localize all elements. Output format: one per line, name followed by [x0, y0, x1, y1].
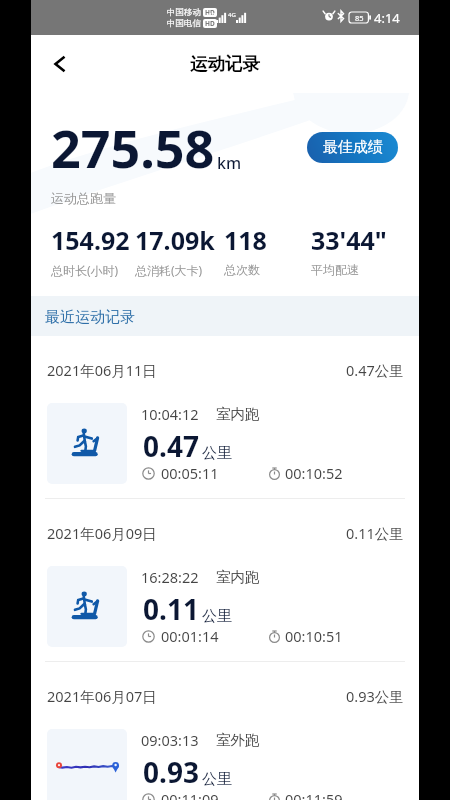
- staticText: 00:10:52: [285, 463, 343, 483]
- staticText: 00:10:51: [285, 626, 343, 646]
- staticText: 总次数: [224, 262, 260, 277]
- staticText: 室内跑: [216, 405, 260, 423]
- staticText: 85: [355, 13, 364, 23]
- staticText: 0.93公里: [346, 686, 404, 706]
- staticText: 10:04:12: [141, 404, 199, 424]
- staticText: 中国电信: [167, 18, 201, 29]
- staticText: 中国移动: [167, 7, 201, 18]
- staticText: 公里: [202, 607, 232, 626]
- staticText: 总消耗(大卡): [135, 262, 203, 278]
- staticText: 0.47: [143, 427, 199, 465]
- button[interactable]: 最佳成绩: [307, 132, 398, 163]
- staticText: 4G: [208, 11, 216, 19]
- staticText: 室内跑: [216, 568, 260, 586]
- staticText: 0.93: [143, 753, 199, 791]
- staticText: 公里: [202, 444, 232, 463]
- staticText: 4:14: [374, 9, 400, 27]
- button[interactable]: 2021年06月07日: [31, 662, 419, 800]
- staticText: 平均配速: [311, 262, 359, 277]
- staticText: 16:28:22: [141, 567, 199, 587]
- staticText: 运动总跑量: [51, 190, 116, 206]
- staticText: 最近运动记录: [45, 308, 135, 327]
- staticText: 0.47公里: [346, 360, 404, 380]
- staticText: 00:05:11: [161, 463, 219, 483]
- staticText: 室外跑: [216, 731, 260, 749]
- staticText: 00:11:09: [161, 789, 219, 800]
- staticText: HD: [205, 19, 215, 28]
- staticText: 2021年06月07日: [47, 686, 157, 706]
- staticText: 公里: [202, 770, 232, 789]
- staticText: 00:11:59: [285, 789, 343, 800]
- staticText: 154.92: [51, 223, 130, 257]
- staticText: 118: [224, 223, 267, 257]
- staticText: km: [217, 152, 242, 174]
- staticText: 总时长(小时): [51, 262, 119, 278]
- button[interactable]: Back: [39, 43, 81, 85]
- staticText: 0.11: [143, 590, 199, 628]
- staticText: 17.09k: [135, 223, 215, 257]
- staticText: 00:01:14: [161, 626, 219, 646]
- staticText: 运动记录: [190, 53, 260, 75]
- staticText: 2021年06月09日: [47, 523, 157, 543]
- staticText: 4G: [228, 11, 236, 19]
- staticText: 最佳成绩: [323, 138, 383, 157]
- staticText: 33'44": [311, 223, 387, 257]
- button[interactable]: 2021年06月11日: [31, 336, 419, 498]
- staticText: 2021年06月11日: [47, 360, 157, 380]
- button[interactable]: 2021年06月09日: [31, 499, 419, 661]
- staticText: 0.11公里: [346, 523, 404, 543]
- staticText: 275.58: [51, 112, 215, 183]
- staticText: HD: [205, 8, 215, 17]
- staticText: 09:03:13: [141, 730, 199, 750]
